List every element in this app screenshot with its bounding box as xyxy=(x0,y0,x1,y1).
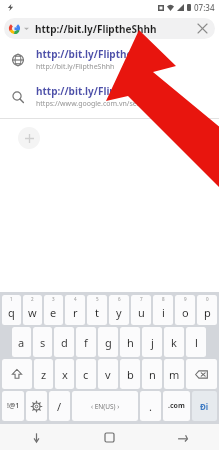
button[interactable]: c xyxy=(76,359,96,389)
button[interactable]: Shift xyxy=(2,359,32,389)
staticText: !@1 xyxy=(7,401,20,411)
button[interactable]: b xyxy=(120,359,140,389)
button[interactable]: Hide keyboard xyxy=(0,424,73,450)
staticText: 1 xyxy=(10,296,13,302)
staticText: http://bit.ly/FliptheShhh xyxy=(35,22,192,36)
button[interactable]: m xyxy=(164,359,184,389)
staticText: g xyxy=(105,335,112,350)
button[interactable]: Go xyxy=(192,391,217,421)
button[interactable]: d xyxy=(54,327,74,357)
staticText: q xyxy=(8,305,15,320)
button[interactable]: http://bit.ly/FliptheShhh xyxy=(4,18,215,39)
button[interactable]: / xyxy=(49,391,70,421)
staticText: . xyxy=(149,399,152,414)
staticText: y xyxy=(116,305,122,320)
staticText: m xyxy=(169,367,180,382)
button[interactable]: 8 xyxy=(153,295,173,325)
staticText: http://bit.ly/FliptheShhh xyxy=(36,47,158,61)
staticText: e xyxy=(50,305,57,320)
staticText: j xyxy=(151,335,154,350)
button[interactable]: Back xyxy=(146,424,219,450)
staticText: p xyxy=(204,305,211,320)
button[interactable]: 2 xyxy=(23,295,42,325)
button[interactable]: h xyxy=(120,327,140,357)
button[interactable]: g xyxy=(98,327,118,357)
staticText: l xyxy=(195,335,198,350)
staticText: d xyxy=(61,335,68,350)
staticText: x xyxy=(62,367,68,382)
button[interactable]: . xyxy=(140,391,161,421)
button[interactable]: 9 xyxy=(175,295,195,325)
staticText: 0 xyxy=(206,296,209,302)
button[interactable]: 3 xyxy=(44,295,63,325)
staticText: c xyxy=(83,367,89,382)
staticText: r xyxy=(73,305,78,320)
button[interactable]: 0 xyxy=(197,295,217,325)
button[interactable]: Symbols xyxy=(2,391,24,421)
button[interactable]: s xyxy=(33,327,52,357)
staticText: .com xyxy=(168,401,185,411)
staticText: a xyxy=(18,335,25,350)
staticText: 6 xyxy=(118,296,121,302)
button[interactable]: 1 xyxy=(2,295,21,325)
staticText: ‹ EN(US) › xyxy=(91,402,120,411)
staticText: http://bit.ly/FliptheShhh xyxy=(36,84,158,98)
button[interactable]: v xyxy=(98,359,118,389)
button[interactable]: 7 xyxy=(131,295,151,325)
other: Search xyxy=(12,91,24,103)
staticText: v xyxy=(105,367,111,382)
staticText: o xyxy=(182,305,189,320)
staticText: i xyxy=(162,305,165,320)
staticText: 5 xyxy=(96,296,99,302)
staticText: 3 xyxy=(52,296,55,302)
staticText: k xyxy=(171,335,177,350)
button[interactable]: Dot com xyxy=(163,391,190,421)
staticText: 4 xyxy=(74,296,77,302)
button[interactable]: l xyxy=(186,327,206,357)
button[interactable]: z xyxy=(34,359,53,389)
button[interactable]: n xyxy=(142,359,162,389)
button[interactable]: 5 xyxy=(87,295,107,325)
staticText: w xyxy=(28,305,37,320)
button[interactable]: k xyxy=(164,327,184,357)
staticText: b xyxy=(127,367,134,382)
staticText: 8 xyxy=(162,296,165,302)
staticText: n xyxy=(149,367,156,382)
button[interactable]: x xyxy=(55,359,74,389)
staticText: t xyxy=(95,305,99,320)
staticText: u xyxy=(138,305,145,320)
staticText: https://www.google.com.vn/search?ie=UTF-… xyxy=(36,99,185,109)
staticText: z xyxy=(41,367,47,382)
button[interactable]: Recents xyxy=(73,424,146,450)
staticText: 2 xyxy=(31,296,34,302)
button[interactable]: Space xyxy=(72,391,138,421)
staticText: f xyxy=(84,335,88,350)
staticText: h xyxy=(127,335,134,350)
staticText: http://bit.ly/FliptheShhh xyxy=(36,62,115,72)
button[interactable]: a xyxy=(12,327,31,357)
button[interactable]: j xyxy=(142,327,162,357)
staticText: 7 xyxy=(140,296,143,302)
button[interactable]: 4 xyxy=(65,295,85,325)
button[interactable]: Settings xyxy=(26,391,47,421)
button[interactable]: New tab xyxy=(18,127,40,149)
button[interactable]: Clear xyxy=(192,18,213,39)
staticText: s xyxy=(40,335,46,350)
other: Web page xyxy=(12,54,24,66)
button[interactable]: Backspace xyxy=(186,359,217,389)
staticText: / xyxy=(57,399,62,414)
button[interactable]: Web page xyxy=(0,41,219,78)
button[interactable]: 6 xyxy=(109,295,129,325)
button[interactable]: f xyxy=(76,327,96,357)
staticText: Đi xyxy=(200,401,209,412)
staticText: 9 xyxy=(184,296,187,302)
button[interactable]: Search xyxy=(0,78,219,115)
staticText: 07:34 xyxy=(194,2,215,13)
